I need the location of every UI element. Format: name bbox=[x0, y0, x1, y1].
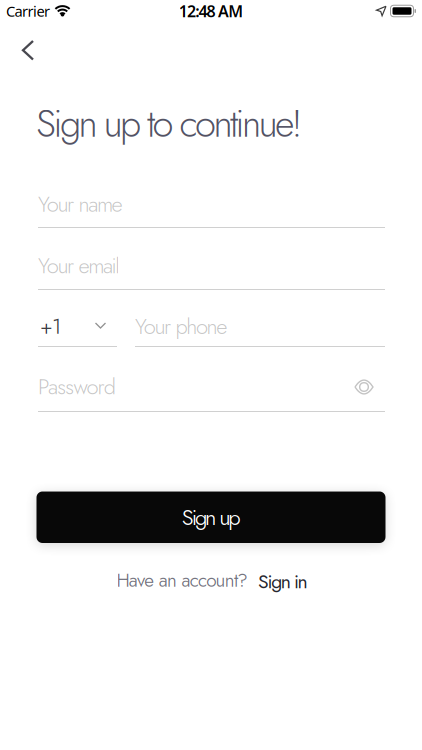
staticText: Have an account? bbox=[116, 566, 247, 594]
button[interactable]: Show password bbox=[351, 377, 377, 397]
staticText: 12:48 AM bbox=[179, 0, 243, 22]
staticText: Sign up to continue! bbox=[36, 96, 302, 151]
staticText: Sign up bbox=[182, 501, 240, 533]
button[interactable]: Country code +1 bbox=[38, 311, 117, 347]
staticText: Your name bbox=[38, 188, 123, 220]
button[interactable]: Back bbox=[0, 0, 43, 65]
staticText: Password bbox=[38, 371, 116, 402]
button[interactable]: Sign in bbox=[254, 563, 312, 599]
staticText: Sign in bbox=[258, 567, 308, 595]
staticText: Carrier bbox=[6, 1, 50, 21]
staticText: Your email bbox=[38, 250, 120, 281]
staticText: +1 bbox=[40, 311, 61, 342]
button[interactable]: Sign up bbox=[36, 491, 385, 543]
staticText: Your phone bbox=[135, 310, 227, 342]
